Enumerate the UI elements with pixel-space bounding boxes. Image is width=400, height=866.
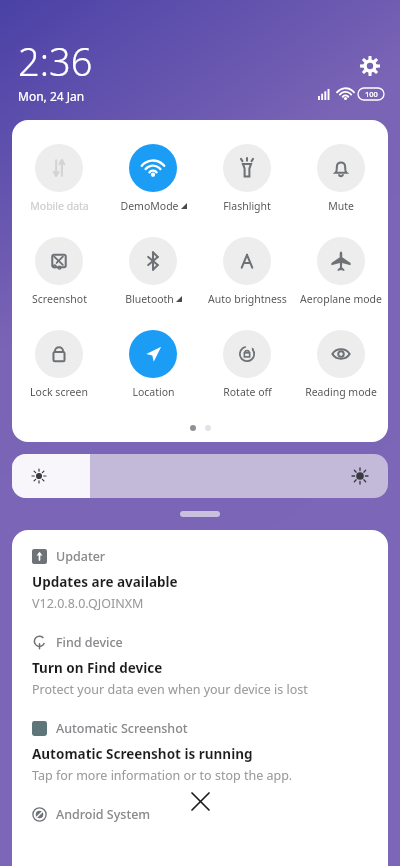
button[interactable]: Android System <box>32 806 370 823</box>
button[interactable]: Mobile data <box>12 144 106 213</box>
button[interactable]: Automatic Screenshot <box>32 720 370 737</box>
staticText: 2:36 <box>18 35 93 87</box>
button[interactable]: Settings <box>352 48 388 84</box>
button[interactable]: Bluetooth <box>106 237 200 306</box>
staticText: Mute <box>328 199 354 213</box>
staticText: Location <box>132 385 175 399</box>
staticText: Rotate off <box>223 385 272 399</box>
staticText: V12.0.8.0.QJOINXM <box>32 595 144 612</box>
button[interactable]: DemoMode <box>106 144 200 213</box>
staticText: Lock screen <box>30 385 88 399</box>
staticText: 100 <box>365 89 378 99</box>
button[interactable]: Auto brightness <box>200 237 294 306</box>
button[interactable]: Brightness <box>12 454 388 498</box>
button[interactable]: Updater <box>32 548 370 565</box>
staticText: Automatic Screenshot <box>56 720 188 737</box>
staticText: Reading mode <box>305 385 377 399</box>
staticText: Bluetooth <box>125 292 174 306</box>
button[interactable]: Screenshot <box>12 237 106 306</box>
staticText: DemoMode <box>120 199 179 213</box>
staticText: Updater <box>56 548 106 565</box>
button[interactable]: Location <box>106 330 200 399</box>
button[interactable]: Find device <box>32 634 370 651</box>
staticText: Auto brightness <box>208 292 287 306</box>
staticText: Mon, 24 Jan <box>18 88 85 104</box>
staticText: Turn on Find device <box>32 659 163 677</box>
button[interactable]: Rotate off <box>200 330 294 399</box>
button[interactable]: Flashlight <box>200 144 294 213</box>
staticText: Aeroplane mode <box>300 292 382 306</box>
button[interactable]: Mute <box>294 144 388 213</box>
staticText: Flashlight <box>223 199 271 213</box>
staticText: Screenshot <box>32 292 87 306</box>
staticText: Updates are available <box>32 573 178 591</box>
button[interactable]: Lock screen <box>12 330 106 399</box>
button[interactable]: Close <box>180 781 220 821</box>
button[interactable]: Reading mode <box>294 330 388 399</box>
staticText: Tap for more information or to stop the … <box>32 767 293 784</box>
button[interactable]: Aeroplane mode <box>294 237 388 306</box>
staticText: Protect your data even when your device … <box>32 681 308 698</box>
staticText: Find device <box>56 634 123 651</box>
staticText: Mobile data <box>30 199 89 213</box>
staticText: Android System <box>56 806 151 823</box>
staticText: Automatic Screenshot is running <box>32 745 253 763</box>
